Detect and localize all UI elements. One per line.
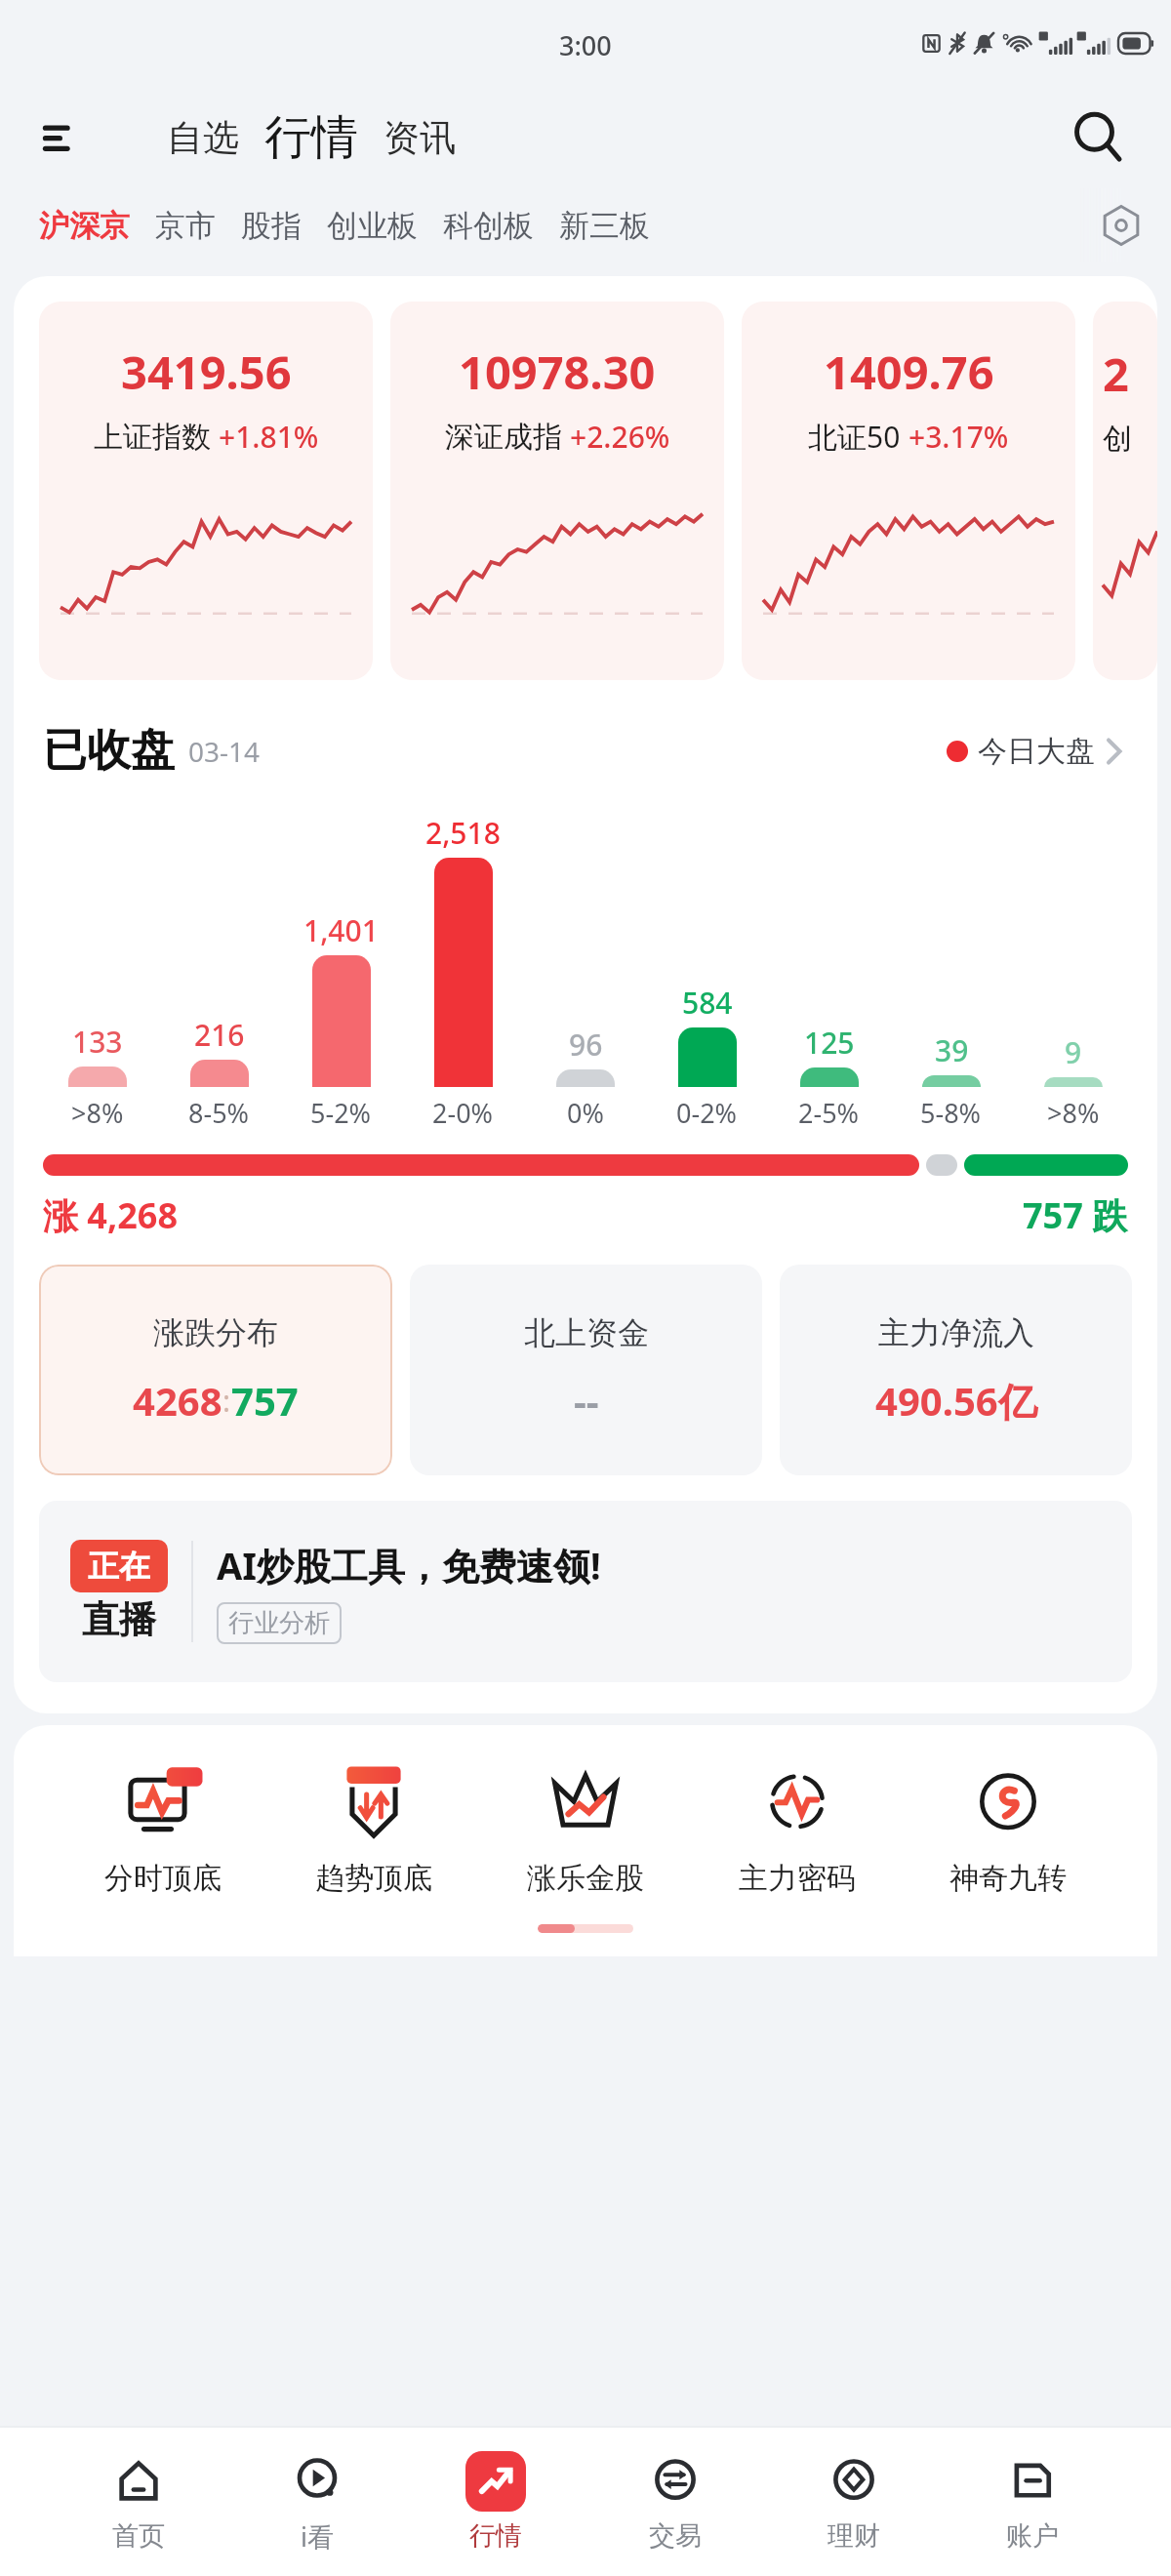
button[interactable]: 理财 — [814, 2447, 894, 2556]
button[interactable]: 主力密码 — [735, 1760, 860, 1897]
button[interactable]: 1409.76 — [742, 302, 1075, 680]
button[interactable]: Menu — [39, 114, 86, 161]
staticText: 直播 — [82, 1596, 156, 1643]
button[interactable]: 创业板 — [327, 199, 418, 253]
staticText: : — [222, 1381, 231, 1421]
staticText: 主力净流入 — [878, 1313, 1034, 1352]
staticText: AI炒股工具，免费速领! — [217, 1540, 601, 1590]
staticText: 9 — [1065, 1032, 1082, 1072]
staticText: 1,401 — [303, 910, 379, 950]
staticText: 资讯 — [384, 115, 456, 161]
staticText: 5-8% — [920, 1095, 982, 1131]
staticText: 216 — [194, 1015, 245, 1055]
staticText: 理财 — [828, 2519, 880, 2553]
staticText: 神奇九转 — [949, 1860, 1067, 1897]
staticText: 主力密码 — [739, 1860, 856, 1897]
button[interactable]: 行情 — [456, 2447, 536, 2556]
staticText: 行情 — [264, 108, 358, 167]
staticText: 2-0% — [432, 1095, 494, 1131]
button[interactable]: 正在 — [39, 1501, 1132, 1682]
button[interactable]: 自选 — [161, 107, 245, 169]
button[interactable]: 沪深京 — [39, 199, 130, 253]
button[interactable]: 京市 — [155, 199, 216, 253]
staticText: 03-14 — [188, 733, 261, 770]
button[interactable]: i看 — [277, 2446, 357, 2558]
staticText: 5-2% — [310, 1095, 372, 1131]
staticText: 3419.56 — [121, 341, 292, 403]
staticText: 133 — [72, 1022, 123, 1062]
button[interactable]: 涨跌分布 — [39, 1265, 392, 1475]
staticText: 今日大盘 — [978, 733, 1095, 770]
button[interactable]: Search — [1070, 109, 1126, 166]
staticText: 深证成指 — [445, 419, 562, 456]
staticText: 创 — [1103, 421, 1132, 458]
staticText: +2.26% — [570, 417, 670, 457]
staticText: 0% — [567, 1095, 604, 1131]
staticText: 分时顶底 — [104, 1860, 222, 1897]
staticText: 北上资金 — [524, 1313, 649, 1352]
staticText: 新三板 — [559, 207, 650, 245]
button[interactable]: 新三板 — [559, 199, 650, 253]
staticText: i看 — [301, 2518, 334, 2555]
staticText: 490.56亿 — [875, 1374, 1037, 1428]
button[interactable]: 神奇九转 — [946, 1760, 1070, 1897]
staticText: 首页 — [112, 2519, 165, 2553]
button[interactable]: 趋势顶底 — [311, 1760, 436, 1897]
staticText: 3:00 — [559, 27, 612, 63]
staticText: 2,518 — [425, 813, 501, 853]
staticText: >8% — [1047, 1095, 1100, 1131]
staticText: 沪深京 — [39, 207, 130, 245]
staticText: +1.81% — [219, 417, 319, 457]
staticText: 行情 — [469, 2519, 522, 2553]
button[interactable]: 首页 — [99, 2447, 179, 2556]
staticText: 10978.30 — [459, 341, 656, 403]
button[interactable]: 3419.56 — [39, 302, 373, 680]
staticText: 科创板 — [443, 207, 534, 245]
staticText: 757 跌 — [1023, 1191, 1128, 1239]
button[interactable]: 2 — [1093, 302, 1157, 680]
staticText: 757 — [231, 1374, 299, 1427]
button[interactable]: 10978.30 — [390, 302, 724, 680]
staticText: 行业分析 — [228, 1607, 330, 1639]
staticText: 0-2% — [676, 1095, 738, 1131]
staticText: 39 — [935, 1030, 969, 1070]
button[interactable]: 交易 — [635, 2447, 715, 2556]
staticText: 2 — [1103, 342, 1129, 405]
staticText: 涨乐金股 — [527, 1860, 644, 1897]
staticText: 自选 — [167, 115, 239, 161]
staticText: 北证50 — [808, 417, 901, 457]
staticText: 账户 — [1006, 2519, 1059, 2553]
staticText: 趋势顶底 — [315, 1860, 432, 1897]
button[interactable]: 涨乐金股 — [523, 1760, 648, 1897]
staticText: 京市 — [155, 207, 216, 245]
button[interactable]: 账户 — [992, 2447, 1072, 2556]
staticText: 涨 4,268 — [43, 1191, 178, 1239]
button[interactable]: 资讯 — [378, 107, 462, 169]
staticText: 96 — [569, 1025, 603, 1065]
staticText: 2-5% — [798, 1095, 860, 1131]
staticText: 1409.76 — [824, 341, 994, 403]
staticText: 交易 — [649, 2519, 702, 2553]
staticText: 上证指数 — [94, 419, 211, 456]
staticText: 正在 — [88, 1547, 150, 1586]
staticText: 8-5% — [188, 1095, 250, 1131]
staticText: 4268 — [133, 1374, 222, 1427]
button[interactable]: 科创板 — [443, 199, 534, 253]
staticText: >8% — [71, 1095, 124, 1131]
button[interactable]: 行情 — [259, 106, 364, 169]
button[interactable]: 分时顶底 — [101, 1760, 225, 1897]
button[interactable]: 股指 — [241, 199, 302, 253]
staticText: -- — [574, 1374, 599, 1427]
staticText: 涨跌分布 — [153, 1313, 278, 1352]
button[interactable]: 主力净流入 — [780, 1265, 1132, 1475]
button[interactable]: 北上资金 — [410, 1265, 762, 1475]
button[interactable]: Tab settings — [1095, 199, 1148, 252]
staticText: 已收盘 — [43, 723, 175, 779]
button[interactable]: 今日大盘 — [943, 729, 1128, 774]
staticText: 584 — [682, 983, 733, 1023]
staticText: 股指 — [241, 207, 302, 245]
staticText: +3.17% — [909, 417, 1009, 457]
staticText: 创业板 — [327, 207, 418, 245]
staticText: 125 — [804, 1023, 855, 1063]
